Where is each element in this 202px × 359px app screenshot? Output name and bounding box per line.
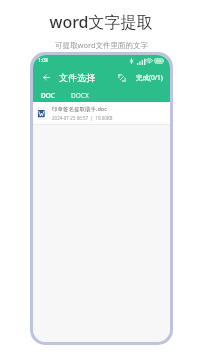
staticText: DOCX [71, 91, 89, 100]
staticText: 文件选择 [59, 72, 95, 83]
staticText: 完成(0/1) [136, 73, 163, 82]
staticText: word文字提取 [49, 11, 153, 33]
staticText: 2024-07-25 06:57 | 19.00KB [52, 115, 113, 121]
button[interactable]: Back [39, 70, 53, 84]
button[interactable]: 完成(0/1) [135, 72, 164, 83]
staticText: DOC [41, 91, 55, 100]
button[interactable]: Expand [115, 71, 128, 84]
button[interactable]: DOC [39, 90, 57, 101]
staticText: 印章签名提取助手.doc [52, 105, 107, 113]
staticText: 1:08 [38, 57, 48, 64]
button[interactable]: 印章签名提取助手.doc [33, 102, 170, 124]
button[interactable]: DOCX [69, 90, 91, 101]
staticText: 可提取word文件里面的文字 [55, 40, 148, 50]
